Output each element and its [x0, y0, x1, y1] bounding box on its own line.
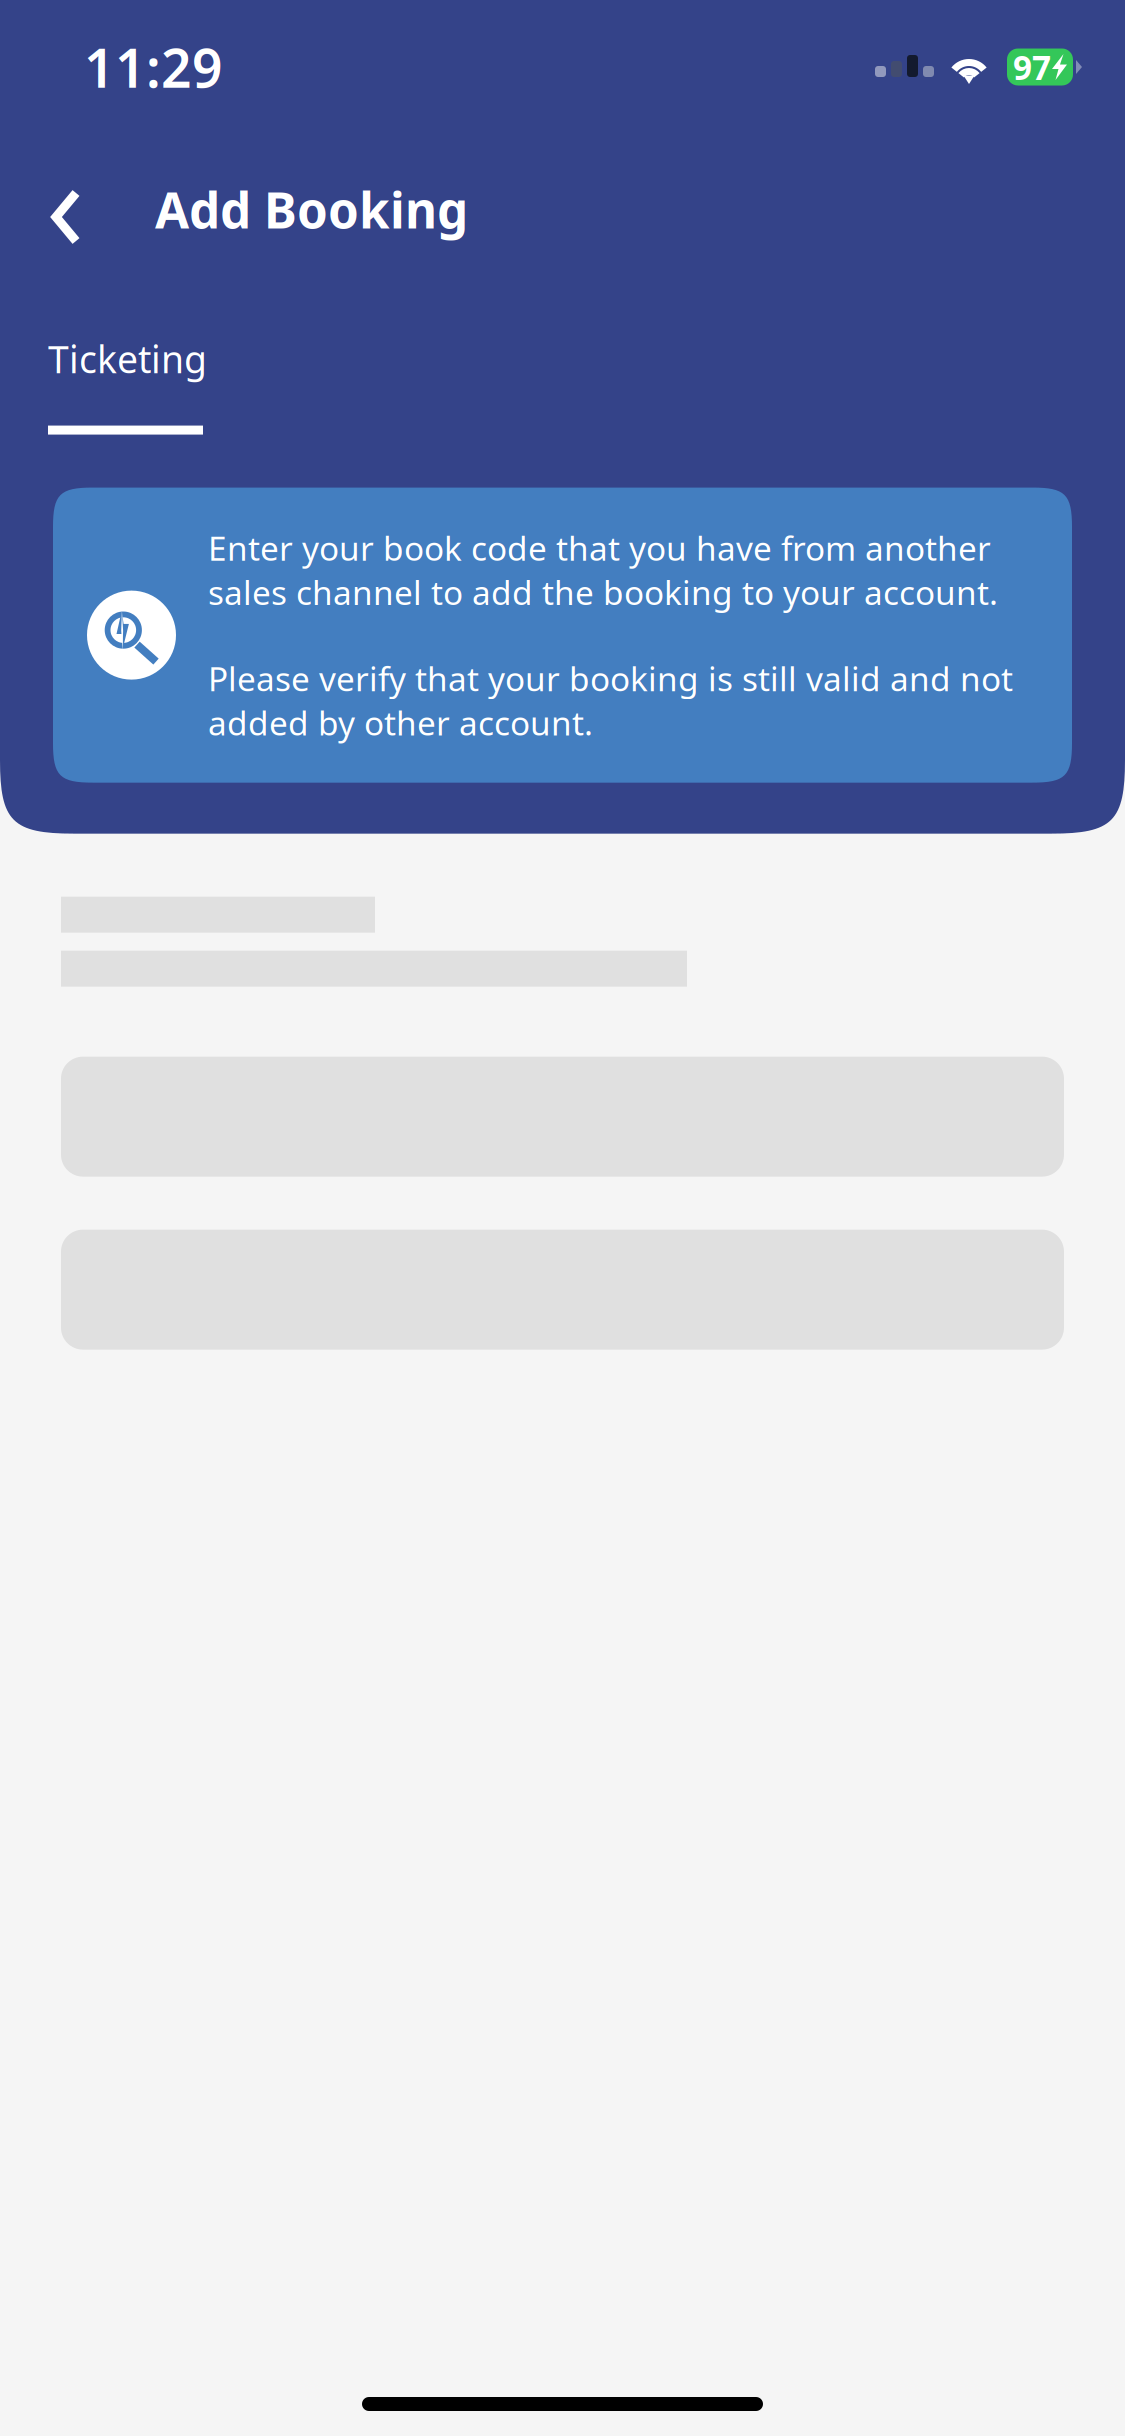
button[interactable]: Back: [0, 134, 115, 248]
button[interactable]: Ticketing: [0, 334, 1125, 435]
staticText: 97: [1013, 45, 1051, 89]
staticText: Enter your book code that you have from …: [208, 526, 998, 614]
staticText: Please verify that your booking is still…: [208, 656, 1013, 745]
staticText: 11:29: [84, 32, 223, 102]
staticText: Add Booking: [155, 176, 468, 242]
staticText: Ticketing: [48, 334, 207, 384]
button[interactable]: Add Booking: [115, 134, 508, 248]
